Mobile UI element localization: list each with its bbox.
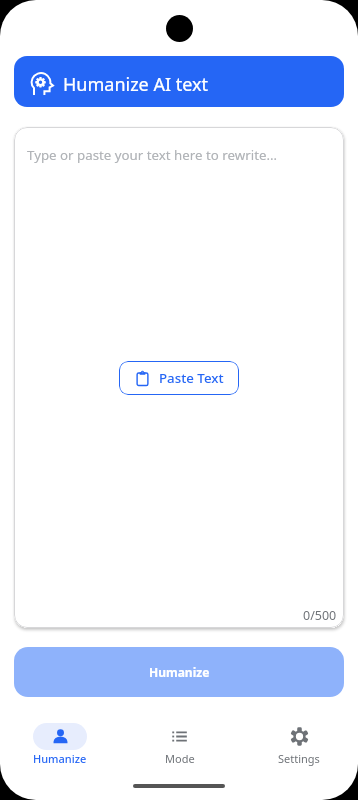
staticText: Mode [165, 751, 195, 766]
button[interactable]: Humanize AI text [14, 56, 344, 107]
button[interactable]: Paste Text [119, 361, 239, 395]
staticText: Humanize [149, 664, 210, 680]
button[interactable]: Mode [120, 722, 239, 766]
staticText: Paste Text [159, 369, 224, 387]
staticText: Settings [278, 751, 320, 766]
staticText: 0/500 [303, 607, 337, 624]
button[interactable]: Type or paste your text here to rewrite… [14, 127, 344, 628]
staticText: Humanize [33, 751, 87, 766]
button[interactable]: Humanize [0, 722, 120, 766]
staticText: Humanize AI text [63, 72, 209, 97]
button[interactable]: Humanize [14, 647, 344, 697]
button[interactable]: Settings [239, 722, 358, 766]
staticText: Type or paste your text here to rewrite… [27, 146, 277, 164]
